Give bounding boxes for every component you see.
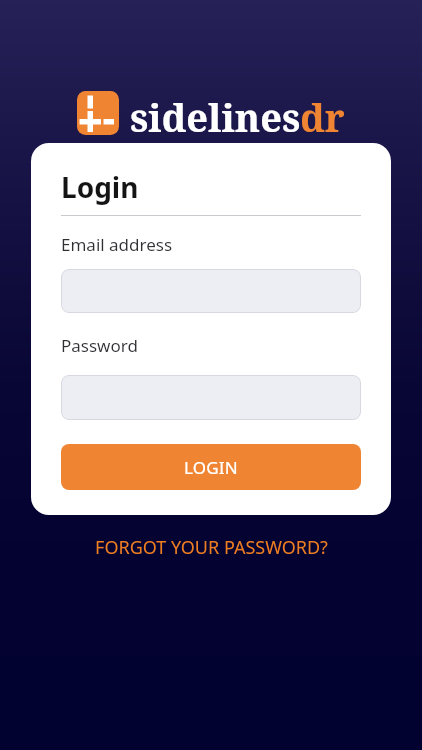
- button[interactable]: [61, 375, 361, 420]
- staticText: FORGOT YOUR PASSWORD?: [95, 535, 328, 560]
- button[interactable]: [61, 269, 361, 313]
- staticText: sidelinesdr: [130, 91, 345, 135]
- staticText: Login: [61, 168, 139, 206]
- button[interactable]: LOGIN: [61, 444, 361, 490]
- staticText: Email address: [61, 233, 173, 256]
- staticText: LOGIN: [184, 456, 238, 479]
- button[interactable]: FORGOT YOUR PASSWORD?: [83, 527, 340, 568]
- staticText: Password: [61, 334, 138, 357]
